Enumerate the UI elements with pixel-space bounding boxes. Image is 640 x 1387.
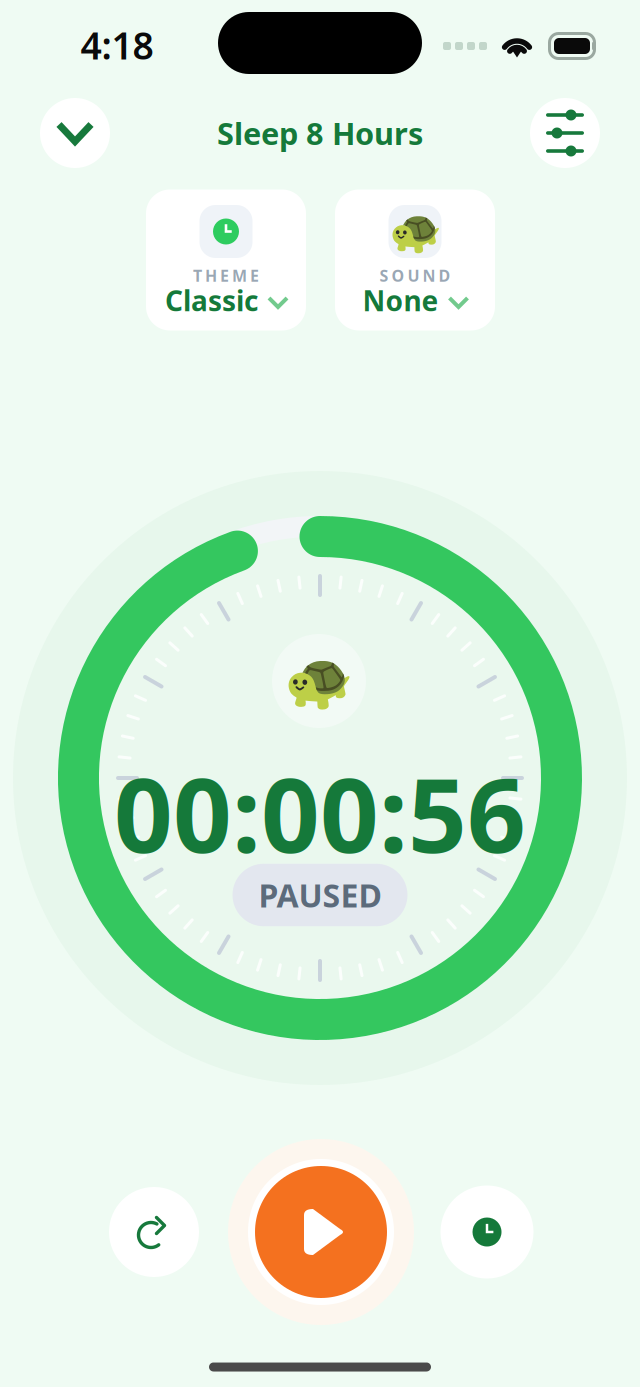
staticText: T H E M E (193, 265, 259, 286)
staticText: Classic (165, 282, 258, 319)
button[interactable]: 🐢 (335, 189, 495, 330)
button[interactable]: Collapse (40, 98, 110, 168)
staticText: PAUSED (258, 874, 381, 916)
button[interactable]: History (440, 1185, 533, 1278)
button[interactable]: Settings (530, 98, 600, 168)
staticText: None (362, 282, 438, 319)
button[interactable]: Reset (109, 1187, 199, 1277)
staticText: 🐢 (388, 207, 441, 256)
staticText: S O U N D (379, 265, 450, 286)
button[interactable]: T H E M E (146, 189, 306, 330)
staticText: Sleep 8 Hours (217, 113, 423, 153)
staticText: 🐢 (284, 649, 354, 713)
button[interactable]: Play (228, 1139, 414, 1325)
staticText: 00:00:56 (114, 745, 526, 881)
staticText: 4:18 (80, 20, 153, 70)
